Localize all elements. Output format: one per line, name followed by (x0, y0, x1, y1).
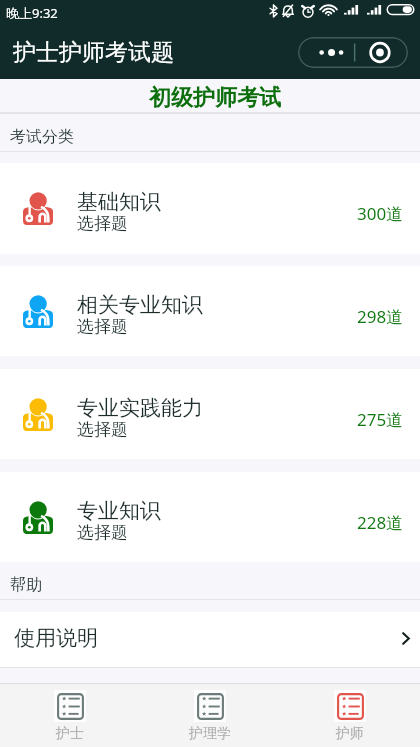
staticText: 使用说明 (14, 625, 401, 651)
staticText: 选择题 (77, 522, 128, 543)
button[interactable]: 基础知识 (0, 163, 420, 254)
staticText: 选择题 (77, 419, 128, 440)
staticText: 相关专业知识 (77, 292, 203, 318)
button[interactable]: 专业知识 (0, 472, 420, 562)
staticText: 初级护师考试 (149, 84, 281, 112)
staticText: 护士 (56, 725, 84, 743)
staticText: 298道 (357, 305, 404, 328)
staticText: 晚上9:32 (6, 4, 58, 22)
button[interactable]: 相关专业知识 (0, 266, 420, 356)
staticText: 选择题 (77, 316, 128, 337)
button[interactable]: 使用说明 (0, 612, 420, 668)
staticText: 275道 (357, 408, 404, 431)
staticText: 228道 (357, 511, 404, 534)
staticText: 考试分类 (10, 127, 74, 147)
staticText: 护士护师考试题 (13, 38, 174, 67)
staticText: 护理学 (189, 725, 231, 743)
staticText: 基础知识 (77, 189, 161, 215)
staticText: 专业实践能力 (77, 395, 203, 421)
staticText: 专业知识 (77, 498, 161, 524)
staticText: 护师 (336, 725, 364, 743)
staticText: 300道 (357, 202, 404, 225)
staticText: 帮助 (10, 575, 42, 595)
button[interactable]: 护师 (280, 684, 420, 747)
button[interactable]: 护理学 (140, 684, 280, 747)
button[interactable]: 护士 (0, 684, 140, 747)
staticText: 选择题 (77, 213, 128, 234)
button[interactable]: 更多 (298, 37, 408, 68)
button[interactable]: 专业实践能力 (0, 369, 420, 459)
